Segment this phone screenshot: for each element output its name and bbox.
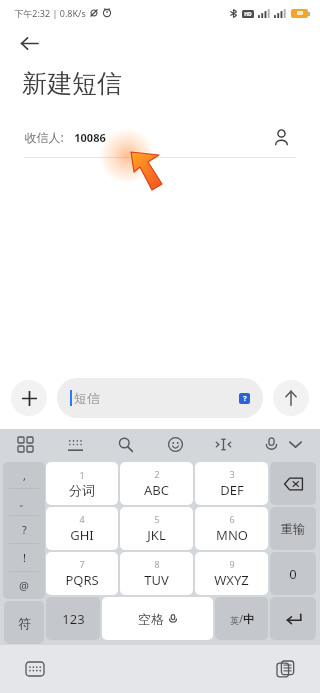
staticText: ? [22, 522, 27, 537]
staticText: WXYZ [214, 571, 249, 589]
staticText: 3 [229, 468, 235, 480]
staticText: TUV [144, 571, 169, 589]
staticText: 6 [229, 513, 235, 525]
button[interactable]: 123 [46, 597, 100, 640]
button[interactable]: Send [273, 380, 309, 416]
button[interactable]: Delete [270, 462, 316, 505]
staticText: , [23, 468, 26, 483]
staticText: 重输 [281, 521, 305, 536]
staticText: 英 [230, 615, 239, 626]
button[interactable]: 9 [195, 552, 268, 595]
staticText: 符 [18, 615, 31, 631]
button[interactable]: 3 [195, 462, 268, 505]
button[interactable]: 2 [120, 462, 193, 505]
button[interactable]: , [3, 462, 45, 488]
button[interactable]: 8 [120, 552, 193, 595]
button[interactable]: 短信 [57, 378, 263, 418]
staticText: ABC [144, 481, 169, 499]
button[interactable]: 符 [4, 601, 44, 644]
button[interactable]: 英 [215, 597, 268, 640]
staticText: HD [244, 11, 252, 18]
staticText: @ [19, 578, 29, 593]
staticText: 新建短信 [22, 68, 122, 99]
button[interactable]: ! [3, 544, 45, 571]
button[interactable]: 空格 [102, 597, 213, 640]
button[interactable]: Hide keyboard [284, 433, 306, 455]
button[interactable]: 0 [270, 552, 316, 595]
button[interactable]: Keyboard [64, 433, 86, 455]
staticText: PQRS [65, 571, 99, 589]
button[interactable]: Search [114, 433, 136, 455]
staticText: 123 [62, 610, 85, 628]
button[interactable]: Voice input [260, 433, 282, 455]
button[interactable]: 1 [46, 462, 118, 505]
button[interactable]: 。 [3, 489, 45, 515]
staticText: 2 [154, 468, 160, 480]
button[interactable]: Clipboard [272, 656, 298, 682]
button[interactable]: 5 [120, 507, 193, 550]
button[interactable]: Enter [270, 597, 316, 640]
staticText: 分词 [69, 482, 95, 498]
button[interactable]: 重输 [270, 507, 316, 550]
button[interactable]: @ [3, 572, 45, 599]
staticText: 下午2:32 | 0.8K/s [14, 7, 86, 19]
staticText: ? [243, 394, 247, 404]
staticText: 9 [229, 558, 235, 570]
staticText: 8 [154, 558, 160, 570]
staticText: 0 [289, 565, 297, 583]
staticText: GHI [70, 526, 94, 544]
staticText: 中 [243, 612, 254, 626]
button[interactable]: ? [3, 516, 45, 543]
button[interactable]: Add attachment [11, 380, 47, 416]
button[interactable]: Choose contact [266, 122, 296, 152]
staticText: 1 [79, 469, 85, 481]
button[interactable]: Cursor move [212, 433, 234, 455]
staticText: 69 [297, 10, 303, 17]
button[interactable]: Emoji [164, 433, 186, 455]
button[interactable]: 4 [46, 507, 118, 550]
button[interactable]: Keyboard layouts [14, 433, 36, 455]
staticText: / [239, 612, 243, 626]
button[interactable]: 6 [195, 507, 268, 550]
staticText: MNO [216, 526, 248, 544]
staticText: 7 [79, 558, 85, 570]
staticText: 收信人: [24, 129, 64, 145]
button[interactable]: Back [12, 26, 46, 60]
staticText: 5 [154, 513, 160, 525]
staticText: 10086 [74, 130, 106, 145]
staticText: 空格 [138, 611, 164, 627]
staticText: 。 [19, 495, 30, 509]
staticText: JKL [147, 526, 166, 544]
staticText: 短信 [74, 390, 100, 406]
button[interactable]: Switch keyboard [22, 656, 48, 682]
staticText: 4 [79, 513, 85, 525]
staticText: DEF [220, 481, 244, 499]
staticText: ! [23, 550, 26, 565]
button[interactable]: 7 [46, 552, 118, 595]
